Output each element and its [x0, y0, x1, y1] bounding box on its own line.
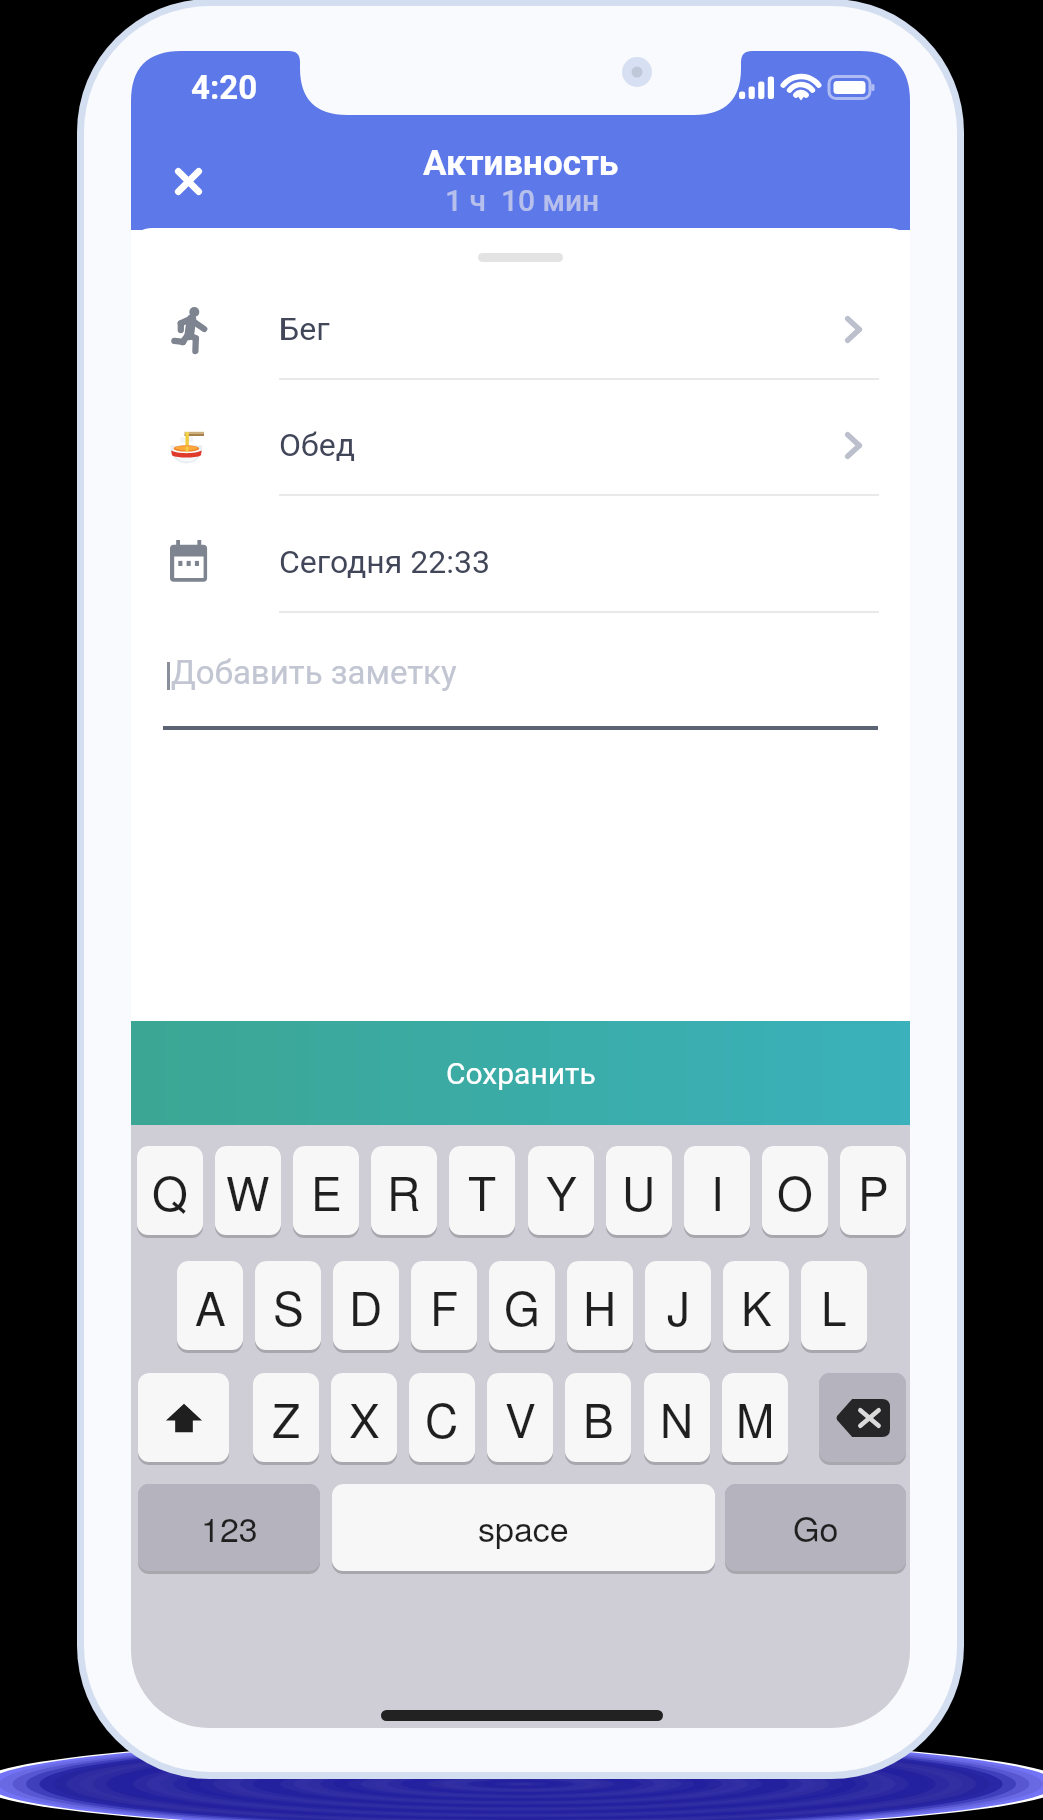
button[interactable]: N — [644, 1373, 710, 1462]
button[interactable]: E — [293, 1146, 359, 1235]
staticText: 4:20 — [191, 68, 258, 107]
staticText: L — [821, 1273, 847, 1339]
button[interactable]: I — [684, 1146, 750, 1235]
staticText: J — [667, 1273, 690, 1339]
button[interactable]: Q — [137, 1146, 203, 1235]
button[interactable]: U — [606, 1146, 672, 1235]
button[interactable]: Сохранить — [131, 1021, 910, 1125]
staticText: Q — [152, 1158, 188, 1224]
staticText: F — [430, 1273, 459, 1339]
button[interactable]: V — [487, 1373, 553, 1462]
button[interactable]: Обед — [131, 380, 910, 496]
staticText: I — [711, 1158, 724, 1224]
staticText: W — [226, 1158, 270, 1224]
button[interactable]: S — [255, 1261, 321, 1350]
button[interactable]: Добавить заметку — [131, 614, 910, 744]
button[interactable]: C — [409, 1373, 475, 1462]
button[interactable]: G — [489, 1261, 555, 1350]
staticText: X — [349, 1385, 380, 1451]
button[interactable]: T — [449, 1146, 515, 1235]
button[interactable]: A — [177, 1261, 243, 1350]
staticText: Сохранить — [446, 1056, 596, 1091]
staticText: Бег — [279, 310, 330, 348]
button[interactable]: Backspace — [819, 1373, 906, 1462]
button[interactable]: space — [332, 1484, 715, 1571]
staticText: R — [387, 1158, 421, 1224]
button[interactable]: Shift — [138, 1373, 229, 1462]
button[interactable]: Бег — [131, 264, 910, 380]
button[interactable]: Go — [725, 1484, 906, 1571]
staticText: Y — [546, 1158, 577, 1224]
button[interactable]: F — [411, 1261, 477, 1350]
staticText: V — [505, 1385, 536, 1451]
button[interactable]: J — [645, 1261, 711, 1350]
button[interactable]: B — [565, 1373, 631, 1462]
staticText: K — [741, 1273, 772, 1339]
button[interactable]: M — [722, 1373, 788, 1462]
staticText: Z — [272, 1385, 301, 1451]
staticText: P — [858, 1158, 889, 1224]
button[interactable]: H — [567, 1261, 633, 1350]
staticText: N — [660, 1385, 694, 1451]
other: Shift — [163, 1397, 205, 1439]
button[interactable]: R — [371, 1146, 437, 1235]
button[interactable]: Y — [528, 1146, 594, 1235]
staticText: S — [273, 1273, 304, 1339]
staticText: H — [583, 1273, 617, 1339]
staticText: 123 — [201, 1503, 258, 1552]
staticText: O — [777, 1158, 813, 1224]
other: Backspace — [836, 1399, 890, 1437]
staticText: space — [478, 1503, 569, 1552]
button[interactable]: L — [801, 1261, 867, 1350]
staticText: U — [622, 1158, 656, 1224]
staticText: Обед — [279, 426, 355, 464]
button[interactable]: K — [723, 1261, 789, 1350]
staticText: T — [468, 1158, 497, 1224]
staticText: B — [583, 1385, 614, 1451]
staticText: M — [736, 1385, 775, 1451]
button[interactable]: Close — [157, 150, 219, 212]
staticText: E — [311, 1158, 342, 1224]
button[interactable]: P — [840, 1146, 906, 1235]
staticText: Сегодня 22:33 — [279, 543, 490, 581]
staticText: G — [504, 1273, 540, 1339]
button[interactable]: Сегодня 22:33 — [131, 497, 910, 613]
staticText: 1 ч 10 мин — [445, 183, 600, 218]
button[interactable]: Z — [253, 1373, 319, 1462]
staticText: C — [425, 1385, 459, 1451]
staticText: A — [195, 1273, 226, 1339]
staticText: Добавить заметку — [171, 653, 457, 692]
button[interactable]: D — [333, 1261, 399, 1350]
button[interactable]: O — [762, 1146, 828, 1235]
button[interactable]: 123 — [138, 1484, 320, 1571]
staticText: D — [349, 1273, 383, 1339]
staticText: Активность — [423, 143, 619, 184]
staticText: Go — [793, 1503, 839, 1552]
button[interactable]: W — [215, 1146, 281, 1235]
button[interactable]: X — [331, 1373, 397, 1462]
